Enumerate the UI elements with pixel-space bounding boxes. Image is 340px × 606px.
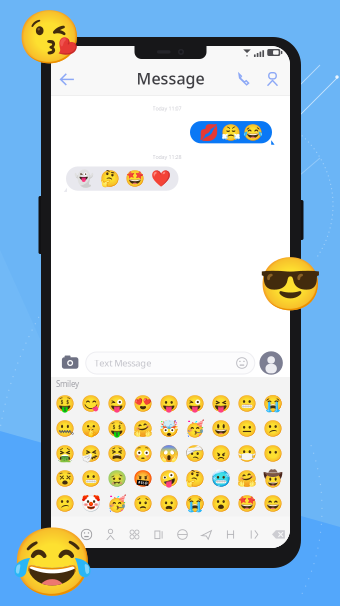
staticText: 🤡 <box>81 495 101 513</box>
button[interactable]: Emoji <box>208 416 234 441</box>
button[interactable]: Emoji <box>182 416 208 441</box>
button[interactable]: Emoji category <box>198 521 214 547</box>
staticText: 🤑 <box>55 394 75 413</box>
staticText: 😕 <box>263 419 283 438</box>
staticText: 🤩 <box>237 495 257 513</box>
button[interactable]: Emoji <box>78 391 104 416</box>
button[interactable]: Emoji <box>234 416 260 441</box>
button[interactable]: Emoji category <box>78 521 94 547</box>
staticText: 🤬 <box>133 470 153 488</box>
staticText: 😘 <box>16 8 81 67</box>
button[interactable]: Emoji category <box>222 521 238 547</box>
button[interactable]: Emoji <box>104 416 130 441</box>
staticText: 🤪 <box>159 470 179 488</box>
button[interactable]: Emoji <box>260 391 286 416</box>
button[interactable]: Emoji <box>260 491 286 516</box>
button[interactable]: Emoji <box>130 416 156 441</box>
button[interactable]: Back <box>55 66 79 92</box>
button[interactable]: Emoji <box>78 416 104 441</box>
staticText: 😶 <box>263 445 283 463</box>
staticText: 😬 <box>81 470 101 488</box>
button[interactable]: Emoji <box>208 466 234 491</box>
button[interactable]: Emoji category <box>126 521 142 547</box>
button[interactable]: Emoji <box>234 466 260 491</box>
staticText: 😄 <box>263 495 283 513</box>
button[interactable]: Emoji <box>156 441 182 466</box>
staticText: 😫 <box>107 445 127 463</box>
button[interactable]: Emoji <box>52 416 78 441</box>
button[interactable]: Emoji <box>182 466 208 491</box>
staticText: 🤩 <box>125 169 145 188</box>
button[interactable]: Emoji <box>104 466 130 491</box>
staticText: 🤫 <box>81 419 101 438</box>
staticText: Smiley <box>56 379 79 389</box>
staticText: 😱 <box>159 445 179 463</box>
staticText: 🤐 <box>55 419 75 438</box>
button[interactable]: Emoji category <box>174 521 190 547</box>
button[interactable]: Emoji category <box>270 521 286 547</box>
button[interactable]: Emoji <box>156 416 182 441</box>
staticText: 😬 <box>237 394 257 413</box>
staticText: Today 11:07 <box>152 105 181 112</box>
button[interactable]: Emoji <box>156 466 182 491</box>
staticText: 🤔 <box>99 169 119 188</box>
staticText: 🥶 <box>211 470 231 488</box>
staticText: 😛 <box>159 394 179 413</box>
button[interactable]: Emoji <box>182 491 208 516</box>
button[interactable]: Emoji <box>260 441 286 466</box>
button[interactable]: Camera <box>60 352 80 374</box>
staticText: 🤠 <box>263 470 283 488</box>
staticText: 😎 <box>258 254 323 314</box>
staticText: 👻 <box>74 169 94 188</box>
staticText: 😜 <box>185 394 205 413</box>
button[interactable]: Emoji <box>130 391 156 416</box>
button[interactable]: Emoji <box>78 441 104 466</box>
button[interactable]: Emoji <box>78 466 104 491</box>
button[interactable]: Emoji <box>234 441 260 466</box>
button[interactable]: Emoji <box>182 441 208 466</box>
button[interactable]: Emoji <box>104 441 130 466</box>
staticText: 😐 <box>237 419 257 438</box>
button[interactable]: Emoji <box>234 491 260 516</box>
button[interactable]: Emoji <box>52 441 78 466</box>
staticText: 😠 <box>211 445 231 463</box>
button[interactable]: Emoji <box>156 491 182 516</box>
button[interactable]: Emoji <box>208 491 234 516</box>
button[interactable]: Contact <box>262 66 283 92</box>
button[interactable]: Text Message <box>86 352 255 374</box>
button[interactable]: Emoji <box>208 391 234 416</box>
button[interactable]: Profile <box>259 351 283 375</box>
button[interactable]: Emoji <box>234 391 260 416</box>
staticText: Message <box>136 68 204 89</box>
staticText: 🤑 <box>107 419 127 438</box>
staticText: 😤 <box>221 123 241 141</box>
button[interactable]: Emoji <box>78 491 104 516</box>
staticText: 😭 <box>185 495 205 513</box>
staticText: 😂 <box>243 123 263 141</box>
staticText: 🤯 <box>159 419 179 438</box>
button[interactable]: Emoji <box>156 391 182 416</box>
button[interactable]: Emoji <box>104 391 130 416</box>
button[interactable]: Emoji category <box>150 521 166 547</box>
button[interactable]: Emoji <box>182 391 208 416</box>
staticText: 😭 <box>263 394 283 413</box>
button[interactable]: Emoji <box>52 491 78 516</box>
staticText: 🤢 <box>107 470 127 488</box>
button[interactable]: Emoji <box>130 466 156 491</box>
staticText: 🤕 <box>185 445 205 463</box>
button[interactable]: Emoji <box>260 416 286 441</box>
button[interactable]: Emoji category <box>54 521 70 547</box>
button[interactable]: Emoji <box>208 441 234 466</box>
staticText: 😷 <box>237 445 257 463</box>
button[interactable]: Emoji <box>52 466 78 491</box>
staticText: 😃 <box>211 419 231 438</box>
button[interactable]: Emoji category <box>102 521 118 547</box>
button[interactable]: Emoji <box>104 491 130 516</box>
button[interactable]: Emoji <box>52 391 78 416</box>
button[interactable]: Emoji <box>130 491 156 516</box>
button[interactable]: Emoji category <box>246 521 262 547</box>
staticText: 😕 <box>55 495 75 513</box>
button[interactable]: Call <box>233 66 254 92</box>
button[interactable]: Emoji <box>130 441 156 466</box>
button[interactable]: Emoji <box>260 466 286 491</box>
